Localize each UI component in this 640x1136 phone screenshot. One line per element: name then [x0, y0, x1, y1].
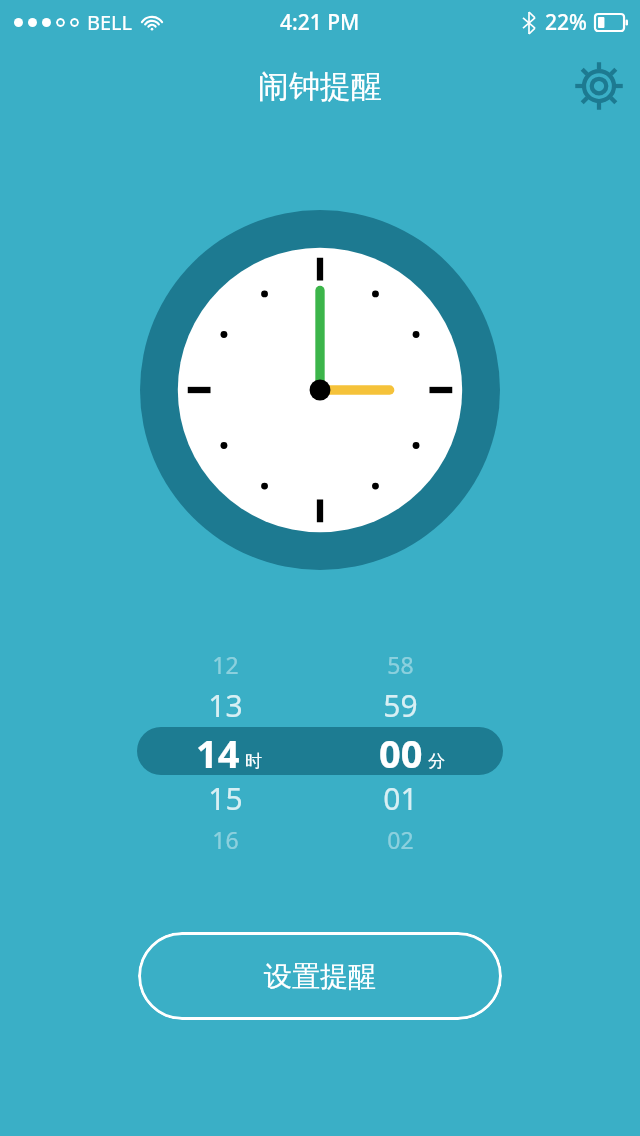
button[interactable]: 02 — [330, 816, 470, 862]
staticText: 02 — [387, 824, 414, 855]
staticText: 设置提醒 — [264, 959, 376, 994]
button[interactable]: Settings — [570, 57, 628, 115]
button[interactable]: 12 — [155, 641, 295, 687]
button[interactable]: 设置提醒 — [138, 932, 502, 1020]
button[interactable]: 15 — [155, 775, 295, 821]
staticText: 13 — [208, 685, 243, 726]
button[interactable]: 58 — [330, 641, 470, 687]
staticText: 01 — [383, 778, 418, 819]
staticText: 58 — [387, 649, 414, 680]
staticText: 14 — [196, 727, 240, 775]
staticText: 分 — [428, 751, 445, 772]
staticText: 4:21 PM — [280, 8, 360, 37]
button[interactable]: 01 — [330, 775, 470, 821]
button[interactable]: 16 — [155, 816, 295, 862]
staticText: 12 — [212, 649, 239, 680]
staticText: 15 — [208, 778, 243, 819]
button[interactable]: 13 — [155, 682, 295, 728]
staticText: BELL — [87, 9, 133, 36]
button[interactable] — [137, 727, 503, 775]
button[interactable]: 59 — [330, 682, 470, 728]
staticText: 00 — [379, 727, 423, 775]
staticText: 59 — [383, 685, 418, 726]
staticText: 16 — [212, 824, 239, 855]
staticText: 闹钟提醒 — [258, 67, 382, 106]
staticText: 22% — [545, 8, 587, 37]
staticText: 时 — [245, 751, 262, 772]
